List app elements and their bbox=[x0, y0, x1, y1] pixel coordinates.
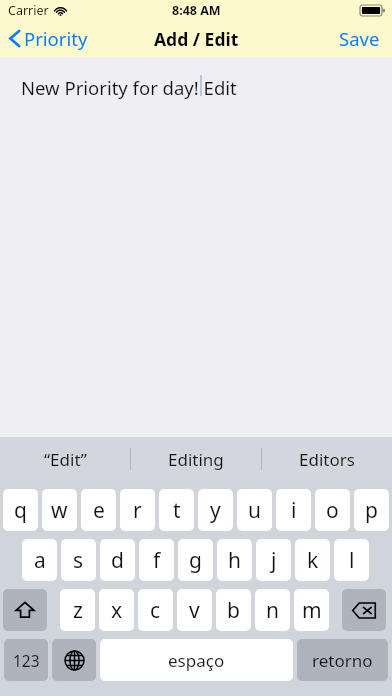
button[interactable]: Backspace bbox=[342, 589, 386, 631]
button[interactable]: q bbox=[3, 489, 38, 531]
button[interactable]: Editing bbox=[131, 437, 261, 481]
staticText: r bbox=[133, 496, 142, 525]
staticText: Save bbox=[339, 26, 380, 51]
button[interactable]: n bbox=[255, 589, 290, 631]
button[interactable]: l bbox=[334, 539, 369, 581]
button[interactable]: Change keyboard language bbox=[52, 639, 96, 681]
button[interactable]: d bbox=[100, 539, 135, 581]
button[interactable]: retorno bbox=[297, 639, 388, 681]
staticText: g bbox=[189, 546, 202, 575]
button[interactable]: z bbox=[60, 589, 95, 631]
staticText: b bbox=[227, 596, 240, 625]
button[interactable]: h bbox=[217, 539, 252, 581]
staticText: a bbox=[34, 546, 46, 575]
button[interactable]: p bbox=[354, 489, 389, 531]
button[interactable]: b bbox=[216, 589, 251, 631]
button[interactable]: k bbox=[295, 539, 330, 581]
staticText: q bbox=[14, 496, 27, 525]
staticText: w bbox=[51, 496, 68, 525]
button[interactable]: t bbox=[159, 489, 194, 531]
staticText: h bbox=[228, 546, 241, 575]
staticText: m bbox=[302, 596, 322, 625]
staticText: k bbox=[307, 546, 319, 575]
staticText: d bbox=[111, 546, 124, 575]
staticText: n bbox=[266, 596, 279, 625]
button[interactable]: y bbox=[198, 489, 233, 531]
staticText: Carrier bbox=[8, 2, 49, 19]
button[interactable]: v bbox=[177, 589, 212, 631]
button[interactable]: r bbox=[120, 489, 155, 531]
button[interactable]: “Edit” bbox=[0, 437, 130, 481]
staticText: “Edit” bbox=[44, 448, 87, 471]
staticText: 8:48 AM bbox=[172, 2, 221, 19]
staticText: New Priority for day! Edit bbox=[21, 75, 237, 100]
staticText: f bbox=[153, 546, 161, 575]
button[interactable]: a bbox=[22, 539, 57, 581]
button[interactable]: o bbox=[315, 489, 350, 531]
button[interactable]: x bbox=[99, 589, 134, 631]
staticText: l bbox=[349, 546, 355, 575]
button[interactable]: s bbox=[61, 539, 96, 581]
button[interactable]: c bbox=[138, 589, 173, 631]
button[interactable]: w bbox=[42, 489, 77, 531]
button[interactable]: u bbox=[237, 489, 272, 531]
button[interactable]: j bbox=[256, 539, 291, 581]
staticText: Editors bbox=[299, 448, 355, 471]
staticText: j bbox=[271, 546, 277, 575]
staticText: z bbox=[73, 596, 83, 625]
staticText: y bbox=[210, 496, 221, 525]
staticText: 123 bbox=[13, 650, 40, 671]
button[interactable]: 123 bbox=[4, 639, 48, 681]
staticText: o bbox=[326, 496, 339, 525]
staticText: s bbox=[73, 546, 84, 575]
staticText: c bbox=[150, 596, 161, 625]
button[interactable]: f bbox=[139, 539, 174, 581]
button[interactable]: e bbox=[81, 489, 116, 531]
staticText: t bbox=[173, 496, 181, 525]
staticText: x bbox=[111, 596, 123, 625]
staticText: Priority bbox=[24, 26, 88, 51]
button[interactable]: i bbox=[276, 489, 311, 531]
staticText: u bbox=[248, 496, 261, 525]
button[interactable]: Editors bbox=[262, 437, 392, 481]
staticText: p bbox=[365, 496, 378, 525]
staticText: espaço bbox=[168, 649, 225, 672]
staticText: e bbox=[93, 496, 105, 525]
button[interactable]: Save bbox=[327, 21, 392, 56]
button[interactable]: Priority bbox=[0, 22, 96, 55]
staticText: Editing bbox=[168, 448, 224, 471]
button[interactable]: g bbox=[178, 539, 213, 581]
button[interactable]: espaço bbox=[100, 639, 293, 681]
button[interactable]: Shift bbox=[3, 589, 47, 631]
staticText: retorno bbox=[312, 649, 373, 672]
button[interactable]: m bbox=[294, 589, 329, 631]
staticText: v bbox=[189, 596, 200, 625]
staticText: Add / Edit bbox=[154, 27, 239, 51]
staticText: i bbox=[291, 496, 297, 525]
